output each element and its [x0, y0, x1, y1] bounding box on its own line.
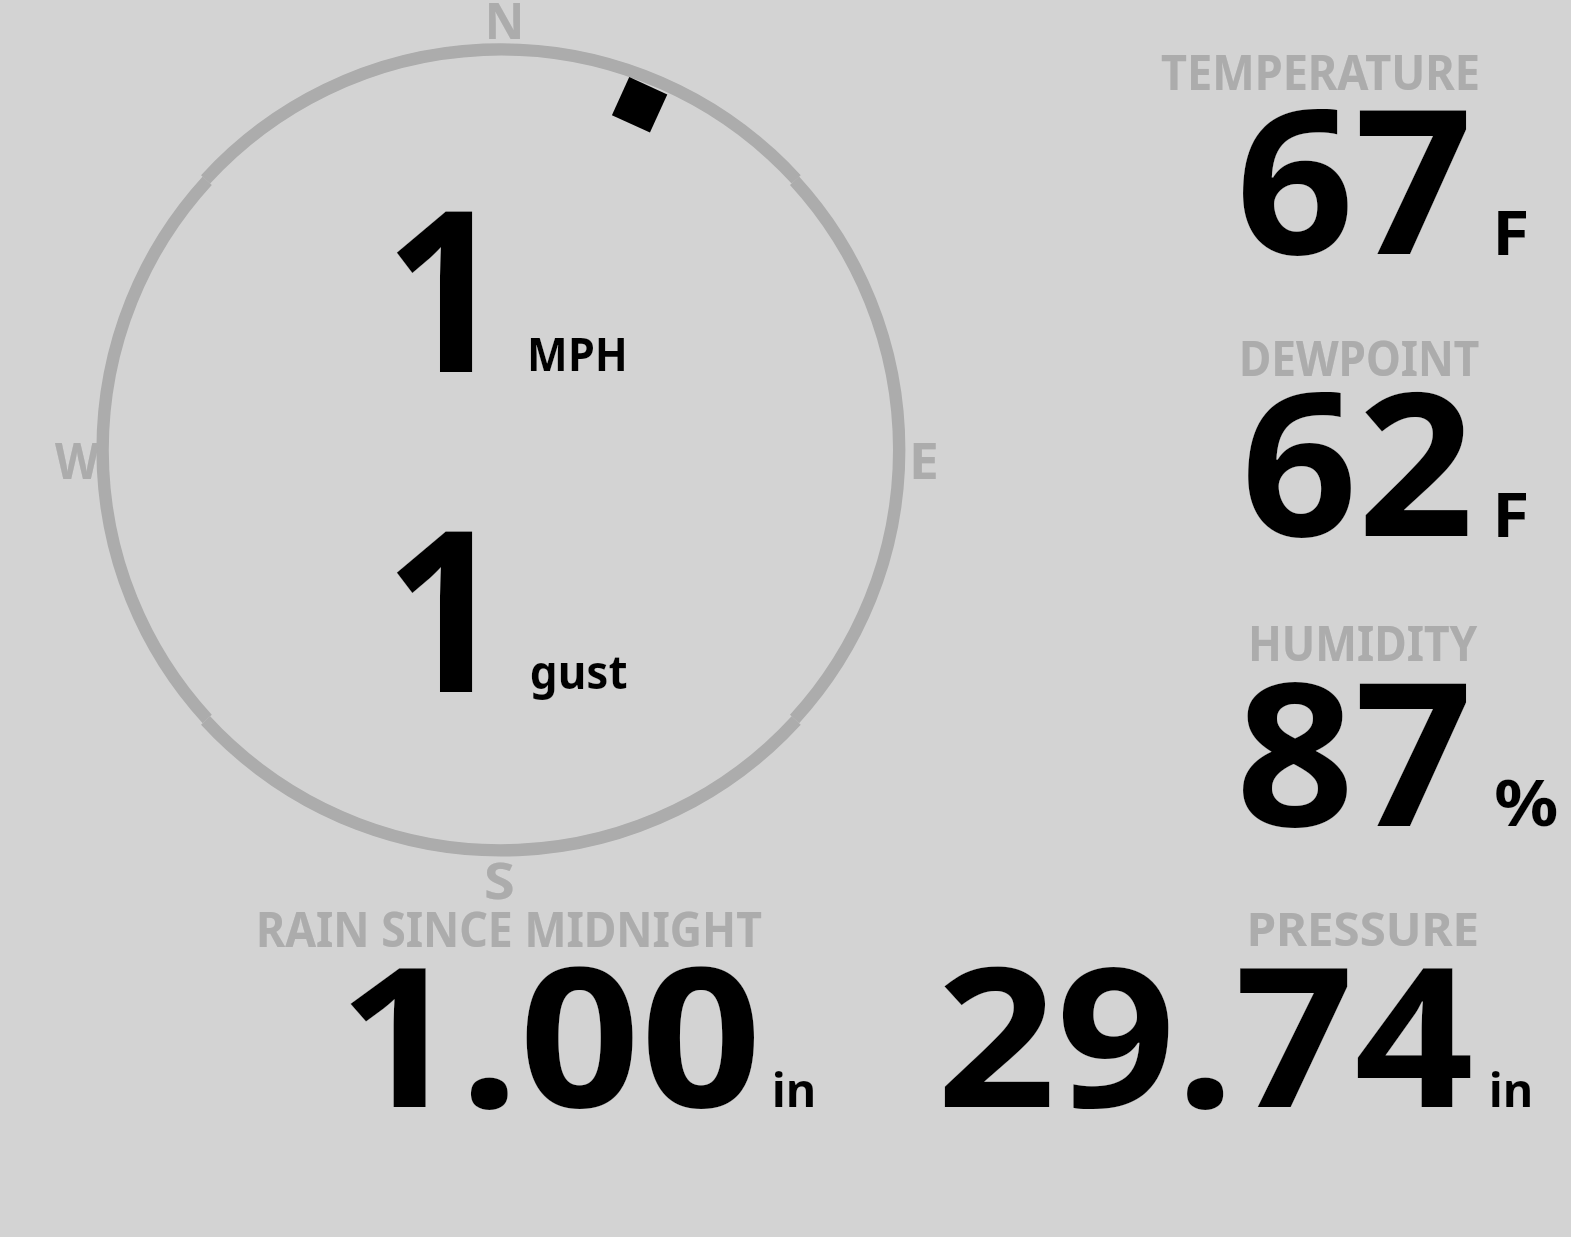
- button[interactable]: Wind compass, 1 mile per hour, gusting 1: [40, 20, 970, 900]
- button[interactable]: Dew point 62 degrees Fahrenheit: [1100, 320, 1571, 570]
- button[interactable]: Pressure 29.74 inches: [900, 895, 1550, 1125]
- button[interactable]: Humidity 87 percent: [1100, 600, 1571, 850]
- button[interactable]: Temperature 67 degrees Fahrenheit: [1100, 30, 1571, 280]
- button[interactable]: Rain since midnight 1.00 inches: [210, 895, 850, 1125]
